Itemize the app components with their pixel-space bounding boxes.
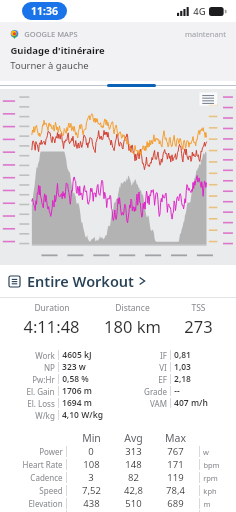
staticText: 273 xyxy=(184,315,213,337)
staticText: IF xyxy=(160,350,167,361)
staticText: VI xyxy=(159,362,167,373)
staticText: 3 xyxy=(88,471,94,484)
staticText: 82 xyxy=(128,471,139,484)
staticText: maintenant xyxy=(185,29,226,39)
staticText: 42,8 xyxy=(124,484,143,497)
staticText: 4:11:48 xyxy=(23,315,80,337)
staticText: 510 xyxy=(125,497,142,510)
staticText: 689 xyxy=(167,497,184,510)
staticText: Grade xyxy=(144,386,167,397)
staticText: 0,81 xyxy=(174,349,191,361)
staticText: Avg xyxy=(124,431,143,445)
staticText: 767 xyxy=(167,445,184,458)
staticText: EF xyxy=(158,374,167,385)
staticText: Heart Rate xyxy=(22,459,63,470)
staticText: 407 m/h xyxy=(174,397,208,409)
button[interactable]: GOOGLE MAPS xyxy=(0,22,236,81)
staticText: 78,4 xyxy=(166,484,185,497)
staticText: Speed xyxy=(39,485,63,496)
staticText: 323 w xyxy=(62,361,86,373)
staticText: Max xyxy=(165,431,186,445)
staticText: Elevation xyxy=(28,498,63,509)
staticText: bpm xyxy=(203,460,220,470)
staticText: 7,52 xyxy=(82,484,101,497)
staticText: 180 km xyxy=(104,315,161,337)
staticText: Duration xyxy=(34,302,70,314)
staticText: Power xyxy=(39,446,63,457)
staticText: El. Gain xyxy=(26,386,55,397)
staticText: 4,10 W/kg xyxy=(62,409,103,421)
staticText: 108 xyxy=(83,458,100,471)
staticText: W/kg xyxy=(35,410,55,421)
staticText: rpm xyxy=(203,473,218,483)
staticText: NP xyxy=(44,362,55,373)
staticText: 171 xyxy=(167,458,184,471)
staticText: 148 xyxy=(125,458,142,471)
staticText: Distance xyxy=(115,302,150,314)
staticText: 438 xyxy=(83,497,100,510)
staticText: Pw:Hr xyxy=(32,374,55,385)
staticText: w xyxy=(203,447,209,457)
staticText: 0,58 % xyxy=(62,373,89,385)
staticText: GOOGLE MAPS xyxy=(24,29,78,39)
button[interactable]: Entire Workout xyxy=(0,265,236,297)
staticText: 11:36 xyxy=(31,4,58,18)
staticText: Entire Workout xyxy=(27,271,134,291)
staticText: m xyxy=(203,499,211,509)
staticText: 4G xyxy=(193,5,206,18)
staticText: 0 xyxy=(88,445,94,458)
staticText: 1,03 xyxy=(174,361,191,373)
staticText: kph xyxy=(203,486,217,496)
staticText: El. Loss xyxy=(27,398,55,409)
staticText: Guidage d'itinéraire xyxy=(10,44,105,57)
staticText: TSS xyxy=(191,302,206,314)
staticText: -- xyxy=(174,385,180,397)
staticText: Tourner à gauche xyxy=(10,59,89,72)
staticText: 1694 m xyxy=(62,397,92,409)
staticText: VAM xyxy=(150,398,167,409)
staticText: Cadence xyxy=(30,472,63,483)
staticText: 4605 kJ xyxy=(62,349,92,361)
staticText: Min xyxy=(82,431,101,445)
staticText: Work xyxy=(35,350,55,361)
staticText: 119 xyxy=(167,471,184,484)
staticText: 313 xyxy=(125,445,142,458)
staticText: 2,18 xyxy=(174,373,191,385)
staticText: 1706 m xyxy=(62,385,92,397)
